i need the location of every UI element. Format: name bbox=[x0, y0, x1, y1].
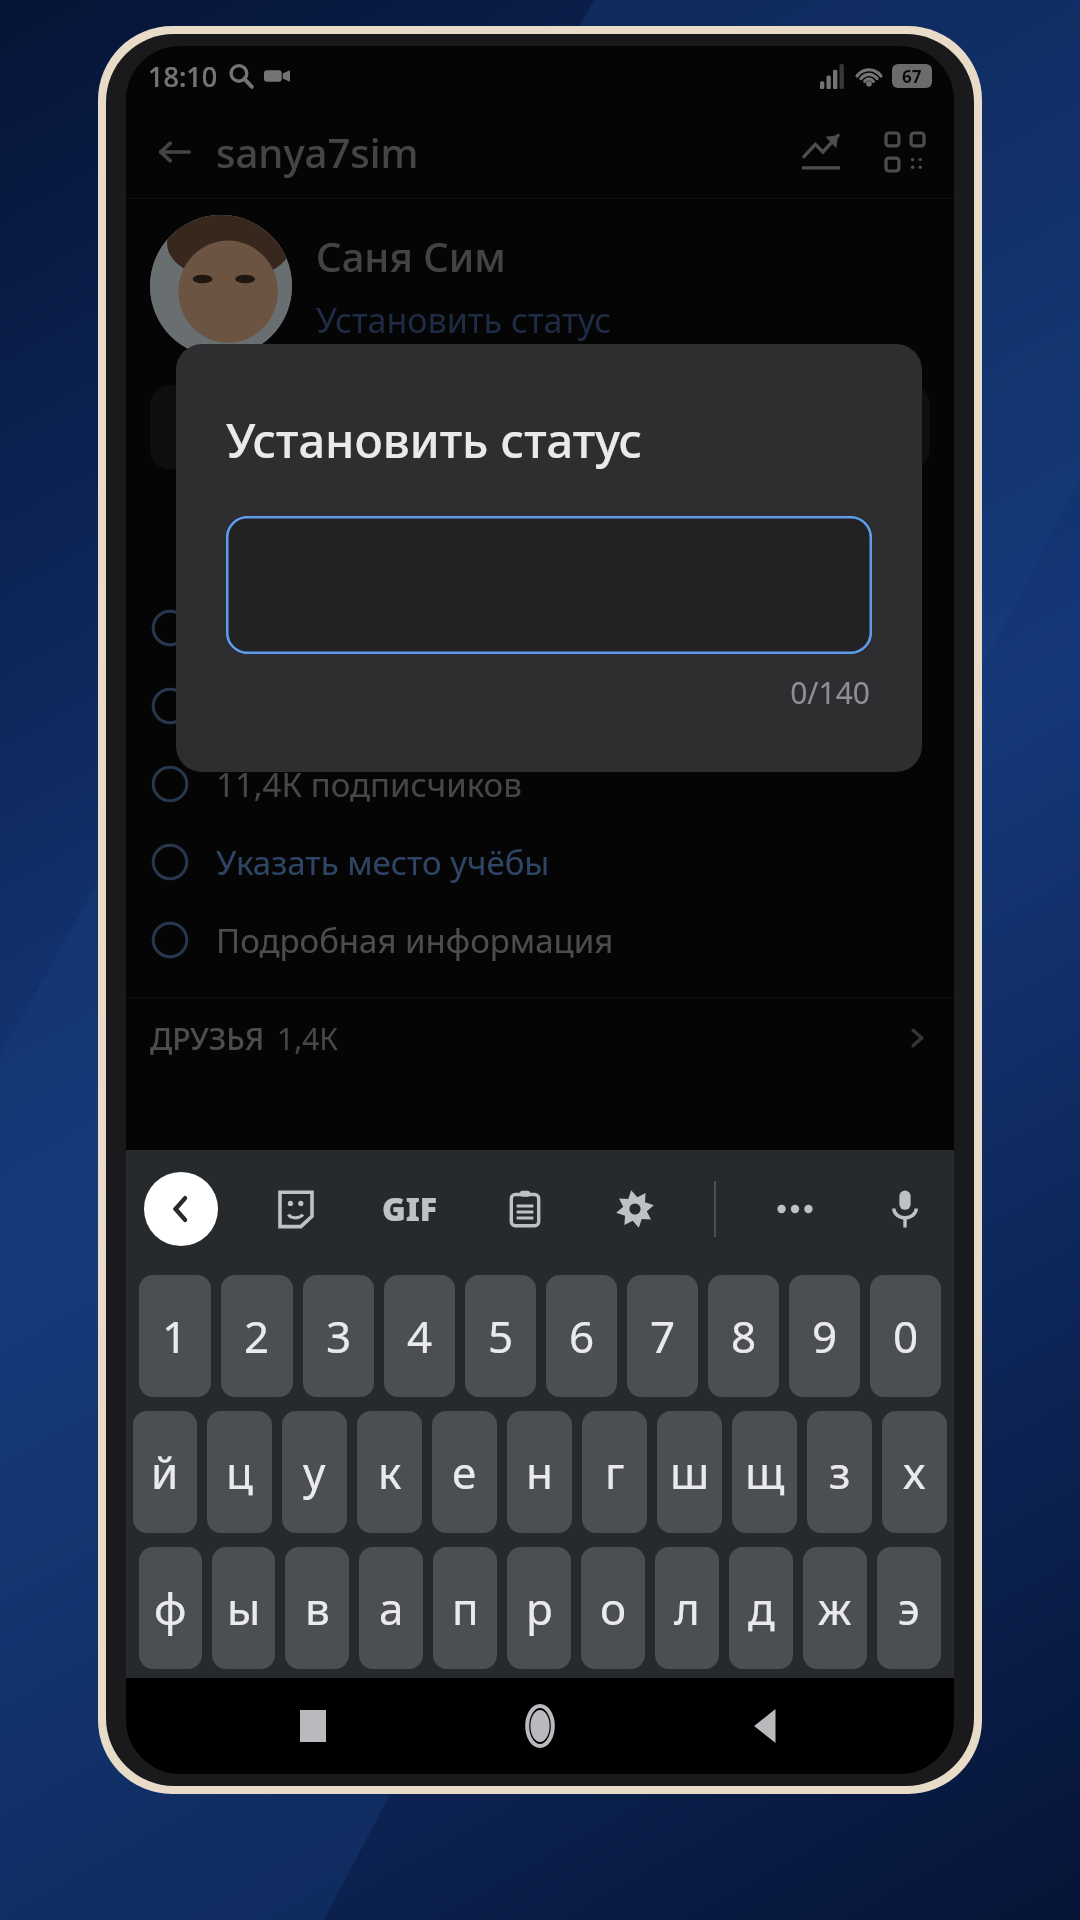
button[interactable]: 4 bbox=[384, 1275, 455, 1397]
button[interactable]: д bbox=[729, 1547, 793, 1669]
staticText: е bbox=[452, 1442, 477, 1502]
button[interactable]: 6 bbox=[546, 1275, 617, 1397]
staticText: Указать город bbox=[216, 606, 441, 651]
button[interactable]: ч bbox=[303, 1683, 362, 1767]
button[interactable]: Statistics bbox=[790, 121, 852, 183]
staticText: г bbox=[605, 1442, 625, 1502]
button[interactable]: 7 bbox=[627, 1275, 698, 1397]
staticText: ДРУЗЬЯ bbox=[150, 1018, 265, 1059]
staticText: ш bbox=[670, 1442, 710, 1502]
staticText: о bbox=[600, 1578, 627, 1638]
button[interactable]: б bbox=[717, 1683, 776, 1767]
staticText: 67 bbox=[902, 65, 922, 88]
button[interactable]: ш bbox=[657, 1411, 722, 1533]
button[interactable]: ы bbox=[212, 1547, 275, 1669]
button[interactable]: ж bbox=[803, 1547, 867, 1669]
button[interactable]: ДРУЗЬЯ bbox=[150, 998, 930, 1078]
button[interactable]: г bbox=[582, 1411, 647, 1533]
button[interactable] bbox=[150, 385, 532, 469]
button[interactable]: в bbox=[285, 1547, 349, 1669]
button[interactable]: More bbox=[764, 1178, 826, 1240]
button[interactable]: Подробная информация bbox=[150, 901, 954, 979]
staticText: х bbox=[903, 1442, 926, 1502]
button[interactable]: Указать место работы bbox=[150, 667, 954, 745]
staticText: з bbox=[829, 1442, 851, 1502]
button[interactable]: 11,4К подписчиков bbox=[150, 745, 954, 823]
staticText: Саня Сим bbox=[316, 229, 506, 283]
button[interactable]: 9 bbox=[789, 1275, 860, 1397]
button[interactable] bbox=[855, 1683, 945, 1767]
button[interactable]: й bbox=[133, 1411, 197, 1533]
button[interactable]: щ bbox=[732, 1411, 797, 1533]
button[interactable]: ф bbox=[139, 1547, 202, 1669]
button[interactable]: Back bbox=[144, 121, 206, 183]
staticText: Установить статус bbox=[316, 297, 611, 343]
staticText: 1 bbox=[162, 1306, 188, 1366]
button[interactable]: Clipboard bbox=[494, 1178, 556, 1240]
staticText: GIF bbox=[382, 1187, 438, 1231]
staticText: ы bbox=[227, 1578, 261, 1638]
staticText: и bbox=[526, 1695, 554, 1755]
button[interactable]: 2 bbox=[221, 1275, 293, 1397]
button[interactable]: 5 bbox=[465, 1275, 536, 1397]
button[interactable] bbox=[226, 516, 872, 654]
staticText: а bbox=[379, 1578, 404, 1638]
button[interactable]: х bbox=[882, 1411, 947, 1533]
button[interactable]: 3 bbox=[303, 1275, 374, 1397]
staticText: 0 bbox=[893, 1306, 919, 1366]
staticText: д bbox=[748, 1578, 775, 1638]
button[interactable] bbox=[548, 385, 930, 469]
button[interactable]: 8 bbox=[708, 1275, 779, 1397]
button[interactable]: и bbox=[510, 1683, 569, 1767]
button[interactable]: Указать город bbox=[150, 589, 954, 667]
button[interactable]: Back bbox=[727, 1686, 807, 1766]
button[interactable]: р bbox=[507, 1547, 571, 1669]
button[interactable]: Recents bbox=[273, 1686, 353, 1766]
button[interactable]: Stickers bbox=[265, 1178, 327, 1240]
button[interactable]: Settings bbox=[604, 1178, 666, 1240]
button[interactable]: у bbox=[282, 1411, 347, 1533]
button[interactable]: QR code bbox=[874, 121, 936, 183]
button[interactable]: Close toolbar bbox=[144, 1172, 218, 1246]
button[interactable]: а bbox=[359, 1547, 423, 1669]
button[interactable]: н bbox=[507, 1411, 572, 1533]
button[interactable]: з bbox=[807, 1411, 872, 1533]
staticText: п bbox=[452, 1578, 479, 1638]
button[interactable]: Home bbox=[500, 1686, 580, 1766]
button[interactable]: ц bbox=[207, 1411, 272, 1533]
button[interactable]: е bbox=[432, 1411, 497, 1533]
staticText: 2 bbox=[244, 1306, 270, 1366]
button[interactable]: GIF bbox=[374, 1173, 446, 1245]
button[interactable]: о bbox=[581, 1547, 645, 1669]
button[interactable]: л bbox=[655, 1547, 719, 1669]
staticText: й bbox=[151, 1442, 179, 1502]
staticText: щ bbox=[745, 1442, 785, 1502]
button[interactable]: к bbox=[357, 1411, 422, 1533]
staticText: Подробная информация bbox=[216, 918, 614, 963]
button[interactable]: 0 bbox=[870, 1275, 941, 1397]
staticText: б bbox=[733, 1695, 760, 1755]
button[interactable]: 1 bbox=[139, 1275, 211, 1397]
staticText: к bbox=[378, 1442, 402, 1502]
button[interactable]: п bbox=[433, 1547, 497, 1669]
button[interactable]: Voice input bbox=[874, 1178, 936, 1240]
button[interactable]: Указать место учёбы bbox=[150, 823, 954, 901]
button[interactable] bbox=[135, 1683, 224, 1767]
staticText: sanya7sim bbox=[216, 125, 419, 179]
staticText: ц bbox=[226, 1442, 253, 1502]
button[interactable]: э bbox=[877, 1547, 941, 1669]
staticText: ф bbox=[154, 1578, 187, 1638]
